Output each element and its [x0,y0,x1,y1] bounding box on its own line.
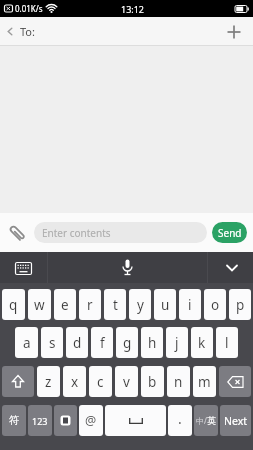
staticText: p [236,296,245,314]
button[interactable]: f [91,327,113,358]
staticText: Enter contents [42,226,111,240]
button[interactable]: t [104,289,126,320]
button[interactable]: v [115,366,138,397]
staticText: u [161,296,170,314]
staticText: 123 [32,415,48,427]
staticText: To: [20,24,35,39]
button[interactable]: x [63,366,86,397]
button[interactable]: Next [220,405,251,436]
button[interactable] [54,405,77,436]
button[interactable] [13,258,33,278]
staticText: o [211,296,220,314]
button[interactable]: a [15,327,38,358]
button[interactable]: Enter contents [34,222,207,243]
button[interactable]: 123 [28,405,52,436]
staticText: 0.01K/s [15,3,43,14]
button[interactable]: w [28,289,51,320]
button[interactable]: u [154,289,176,320]
button[interactable] [2,366,34,397]
button[interactable] [225,23,243,41]
button[interactable]: 中/ [194,405,218,436]
staticText: 符 [9,414,20,427]
button[interactable]: z [37,366,60,397]
button[interactable]: j [166,327,188,358]
button[interactable]: p [229,289,251,320]
staticText: m [198,373,211,391]
button[interactable] [105,405,166,436]
staticText: x [71,373,79,391]
staticText: k [198,334,206,352]
button[interactable]: . [168,405,192,436]
staticText: a [23,334,31,352]
staticText: i [188,296,192,314]
staticText: b [148,373,157,391]
staticText: c [97,373,104,391]
staticText: t [113,296,118,314]
staticText: 英 [207,415,216,426]
staticText: j [175,334,179,352]
staticText: w [34,296,45,314]
button[interactable]: b [141,366,164,397]
staticText: y [137,296,144,314]
staticText: r [87,296,93,314]
button[interactable]: k [191,327,213,358]
staticText: l [225,334,229,352]
staticText: 13:12 [121,3,145,15]
staticText: g [123,334,132,352]
button[interactable]: l [216,327,238,358]
button[interactable]: i [179,289,201,320]
button[interactable]: @ [79,405,103,436]
button[interactable]: s [41,327,63,358]
staticText: @ [85,412,97,429]
staticText: d [73,334,82,352]
button[interactable]: g [116,327,138,358]
staticText: q [9,296,18,314]
button[interactable]: r [79,289,101,320]
button[interactable]: q [2,289,25,320]
button[interactable] [223,259,241,277]
button[interactable]: Send [212,222,247,243]
button[interactable]: d [66,327,88,358]
button[interactable]: 符 [2,405,26,436]
staticText: n [174,373,183,391]
staticText: Send [218,226,242,240]
staticText: f [100,334,105,352]
staticText: . [178,409,182,428]
button[interactable] [219,366,251,397]
staticText: Next [224,414,248,428]
staticText: v [123,373,130,391]
button[interactable]: c [89,366,112,397]
button[interactable] [116,257,138,279]
staticText: z [45,373,52,391]
staticText: s [49,334,56,352]
button[interactable]: n [167,366,190,397]
button[interactable]: o [204,289,226,320]
button[interactable]: To: [7,24,35,39]
button[interactable]: m [193,366,216,397]
button[interactable]: h [141,327,163,358]
staticText: e [61,296,69,314]
button[interactable]: y [129,289,151,320]
staticText: 中/ [196,415,207,426]
button[interactable]: e [54,289,76,320]
staticText: h [148,334,157,352]
